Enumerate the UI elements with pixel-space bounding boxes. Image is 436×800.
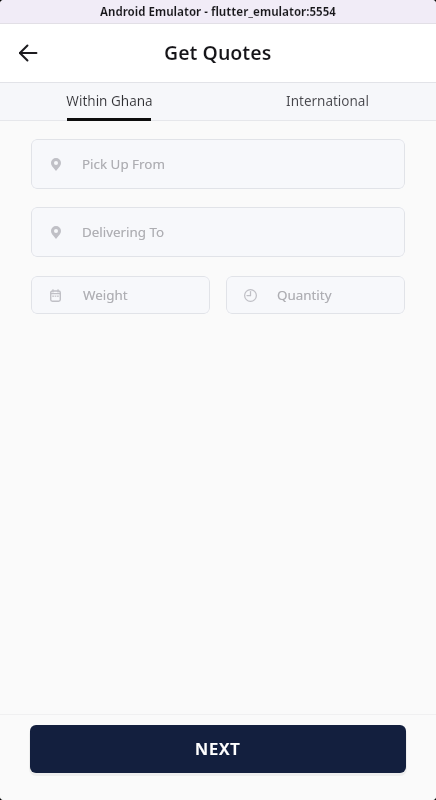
staticText: Quantity	[277, 286, 332, 304]
button[interactable]: Weight	[31, 276, 210, 314]
staticText: Within Ghana	[66, 92, 153, 110]
button[interactable]: Delivering To	[31, 207, 405, 257]
staticText: Pick Up From	[82, 155, 165, 173]
staticText: Weight	[83, 286, 128, 304]
button[interactable]: Back	[10, 35, 46, 71]
staticText: Android Emulator - flutter_emulator:5554	[100, 4, 336, 20]
button[interactable]: Within Ghana	[0, 82, 218, 121]
staticText: International	[286, 92, 369, 110]
staticText: NEXT	[195, 737, 241, 759]
button[interactable]: NEXT	[30, 725, 406, 773]
staticText: Delivering To	[82, 223, 165, 241]
staticText: Get Quotes	[164, 39, 272, 66]
button[interactable]: Quantity	[226, 276, 405, 314]
button[interactable]: Pick Up From	[31, 139, 405, 189]
button[interactable]: International	[218, 82, 436, 121]
